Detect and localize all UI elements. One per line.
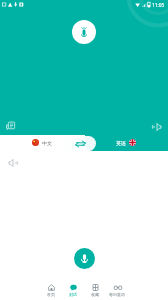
staticText: 11:05 <box>152 2 165 9</box>
button[interactable]: Record Chinese <box>72 20 96 44</box>
button[interactable]: 英语 <box>84 135 168 150</box>
staticText: 首页 <box>47 292 55 297</box>
button[interactable]: Play source <box>7 157 18 168</box>
button[interactable]: 对话 <box>62 282 84 298</box>
staticText: 英语 <box>116 140 126 146</box>
button[interactable]: Transcript <box>6 121 15 130</box>
staticText: 对话 <box>69 292 77 297</box>
button[interactable]: Start recording <box>74 248 95 269</box>
button[interactable]: 首页 <box>40 282 62 298</box>
button[interactable]: 收藏 <box>84 282 106 298</box>
staticText: 收藏 <box>91 292 99 297</box>
staticText: 中文 <box>42 140 52 146</box>
button[interactable]: 中文 <box>0 135 84 150</box>
button[interactable]: Play translation <box>151 121 162 132</box>
button[interactable]: 每日英语 <box>106 282 128 298</box>
staticText: 每日英语 <box>109 292 125 297</box>
button[interactable]: Swap languages <box>64 136 96 151</box>
